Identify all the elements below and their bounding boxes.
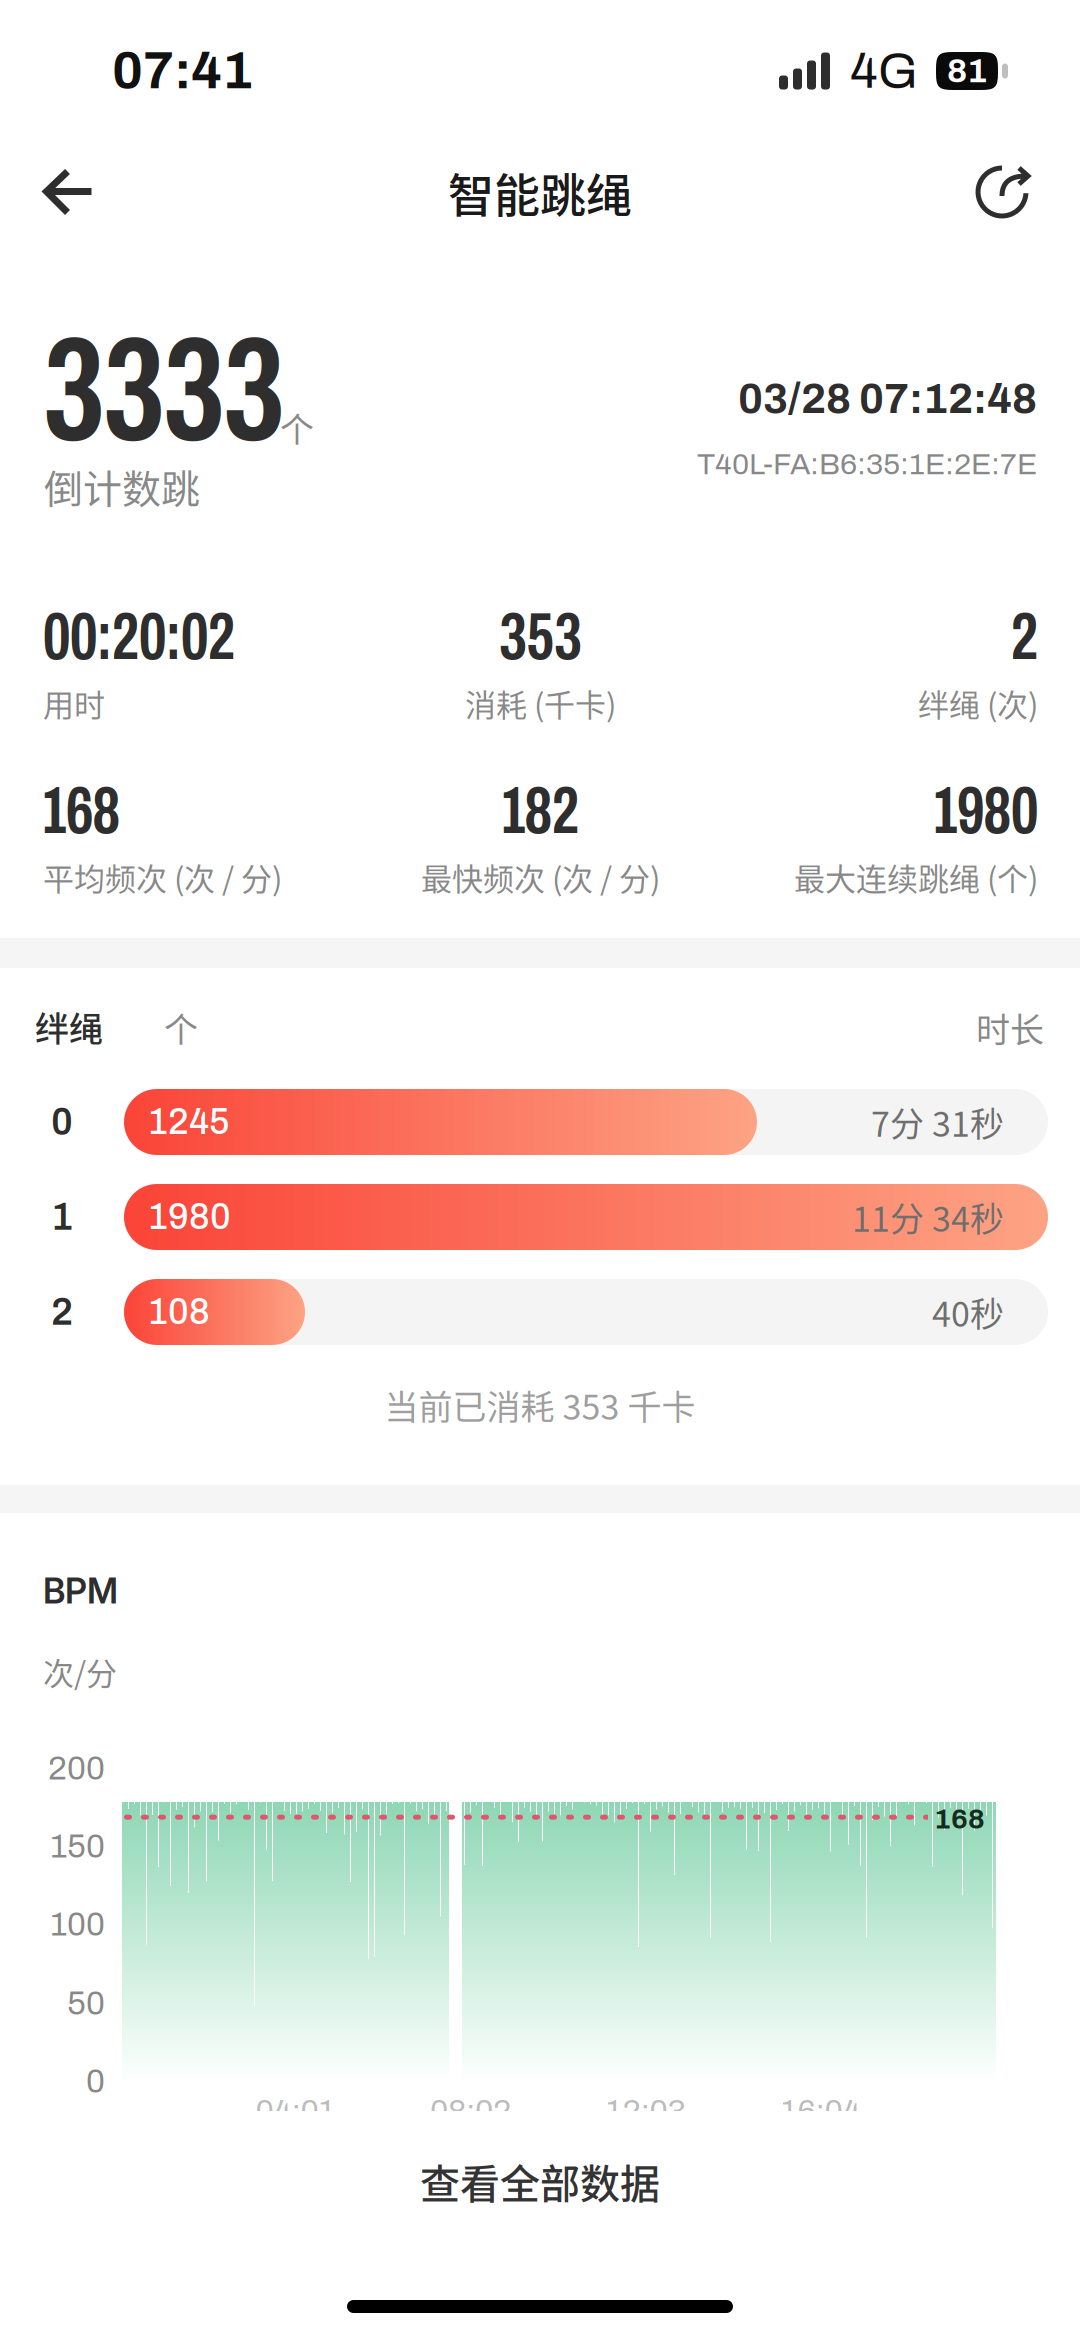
- staticText: 绊绳 (次): [918, 681, 1038, 725]
- staticText: 04:01: [255, 2094, 335, 2129]
- staticText: 时长: [976, 1003, 1044, 1052]
- staticText: 个: [280, 403, 314, 452]
- staticText: 次/分: [43, 1649, 117, 1694]
- staticText: 绊绳: [35, 1002, 103, 1051]
- staticText: 81: [947, 52, 987, 89]
- staticText: 3333: [44, 311, 284, 470]
- staticText: 1245: [148, 1102, 230, 1142]
- staticText: 08:02: [430, 2094, 511, 2129]
- staticText: 个: [164, 1003, 198, 1052]
- staticText: 消耗 (千卡): [465, 681, 616, 725]
- staticText: 4G: [850, 44, 918, 98]
- staticText: 00:20:02: [43, 601, 235, 673]
- staticText: 2: [1011, 601, 1038, 673]
- staticText: 最大连续跳绳 (个): [794, 855, 1038, 899]
- staticText: 100: [50, 1906, 105, 1942]
- staticText: T40L-FA:B6:35:1E:2E:7E: [697, 448, 1037, 481]
- staticText: 查看全部数据: [420, 2152, 660, 2210]
- staticText: 12:03: [605, 2094, 685, 2129]
- staticText: 倒计数跳: [44, 458, 200, 514]
- button[interactable]: 查看全部数据: [0, 2148, 1080, 2214]
- staticText: 0: [51, 1101, 73, 1143]
- staticText: 0: [86, 2063, 105, 2099]
- staticText: 40秒: [932, 1287, 1004, 1337]
- staticText: 168: [934, 1804, 985, 1834]
- staticText: 当前已消耗 353 千卡: [384, 1380, 695, 1430]
- staticText: 182: [502, 775, 579, 847]
- staticText: 11分 34秒: [852, 1192, 1004, 1242]
- staticText: 7分 31秒: [871, 1097, 1004, 1147]
- staticText: 353: [499, 601, 581, 673]
- staticText: 用时: [43, 681, 105, 725]
- staticText: 2: [51, 1291, 73, 1333]
- button[interactable]: Back: [19, 147, 119, 237]
- staticText: BPM: [43, 1570, 118, 1612]
- staticText: 108: [148, 1292, 210, 1332]
- staticText: 最快频次 (次 / 分): [421, 855, 660, 899]
- staticText: 16:04: [780, 2094, 860, 2129]
- staticText: 150: [50, 1828, 105, 1864]
- staticText: 03/28 07:12:48: [738, 376, 1037, 422]
- staticText: 200: [48, 1750, 105, 1786]
- staticText: 智能跳绳: [448, 159, 632, 225]
- staticText: 1980: [148, 1197, 231, 1237]
- staticText: 168: [43, 775, 120, 847]
- staticText: 50: [67, 1985, 105, 2021]
- staticText: 平均频次 (次 / 分): [43, 855, 282, 899]
- staticText: 07:41: [112, 43, 253, 99]
- button[interactable]: Share: [953, 147, 1053, 237]
- staticText: 1980: [934, 775, 1038, 847]
- staticText: 1: [51, 1196, 73, 1238]
